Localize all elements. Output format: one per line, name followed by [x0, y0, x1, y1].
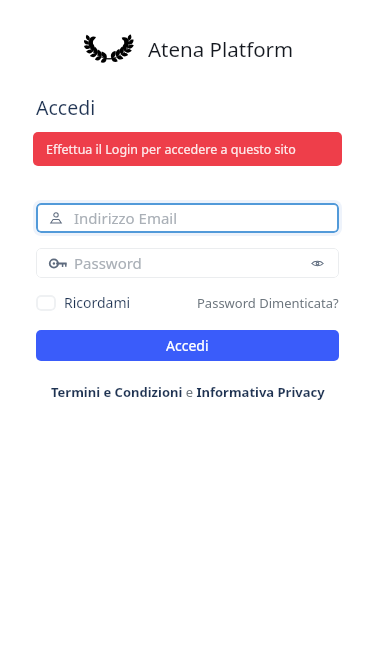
button[interactable]: Password Dimenticata?: [197, 294, 339, 312]
button[interactable]: Show password: [308, 254, 326, 272]
staticText: Ricordami: [64, 293, 131, 312]
button[interactable]: Effettua il Login per accedere a questo …: [33, 132, 342, 166]
staticText: Accedi: [36, 94, 96, 121]
staticText: Atena Platform: [148, 35, 294, 63]
staticText: Indirizzo Email: [74, 208, 178, 228]
staticText: Effettua il Login per accedere a questo …: [46, 141, 296, 158]
button[interactable]: Password: [36, 248, 339, 278]
staticText: Accedi: [166, 336, 209, 355]
button[interactable]: Termini e Condizioni e Informativa Priva…: [51, 383, 325, 401]
staticText: Password Dimenticata?: [197, 294, 339, 312]
button[interactable]: Indirizzo Email: [36, 203, 339, 233]
staticText: Password: [74, 253, 308, 273]
button[interactable]: Accedi: [36, 330, 339, 361]
button[interactable]: Ricordami: [36, 293, 131, 312]
